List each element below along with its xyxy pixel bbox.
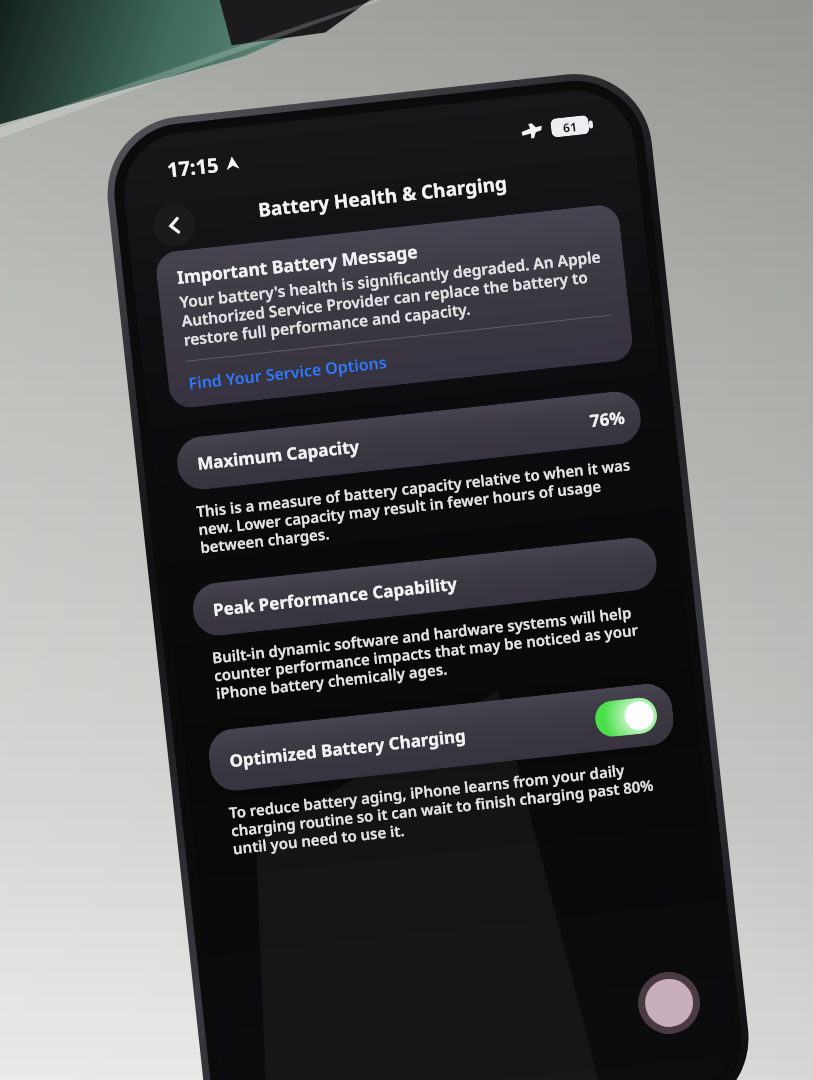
staticText: To reduce battery aging, iPhone learns f… (228, 754, 677, 859)
button[interactable]: Find Your Service Options (187, 351, 388, 394)
staticText: Optimized Battery Charging (228, 724, 467, 772)
button[interactable]: Back (151, 202, 197, 248)
staticText: Important Battery Message (176, 239, 419, 289)
staticText: Your battery's health is significantly d… (178, 245, 610, 350)
button[interactable]: Maximum Capacity (174, 389, 643, 492)
staticText: 76% (589, 406, 626, 432)
staticText: Peak Performance Capability (212, 572, 459, 621)
button[interactable]: Peak Performance Capability (190, 535, 659, 638)
staticText: This is a measure of battery capacity re… (195, 453, 645, 558)
button[interactable]: Optimized Battery Charging, on (593, 696, 659, 738)
staticText: 61 (562, 118, 578, 135)
staticText: Maximum Capacity (196, 434, 360, 475)
button[interactable]: Optimized Battery Charging (206, 681, 676, 793)
staticText: Built-in dynamic software and hardware s… (211, 599, 661, 704)
staticText: Find Your Service Options (187, 351, 388, 394)
staticText: Battery Health & Charging (257, 170, 509, 223)
staticText: 17:15 (166, 151, 220, 183)
